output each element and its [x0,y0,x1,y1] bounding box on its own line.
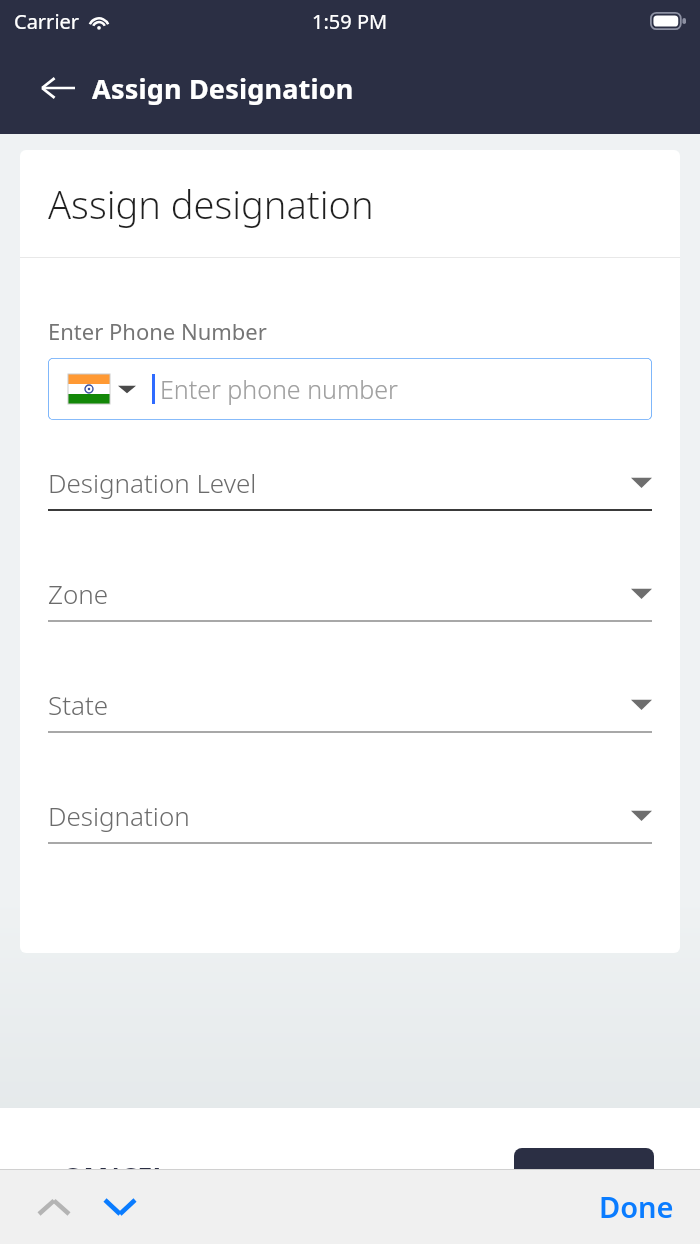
button[interactable]: Done [599,1187,674,1226]
staticText: Designation [48,798,631,833]
button[interactable]: Next field [94,1181,146,1233]
staticText: Designation Level [48,465,631,500]
staticText: Carrier [14,8,80,35]
staticText: Assign Designation [92,70,354,107]
button[interactable]: SAVE [514,1148,654,1209]
staticText: Done [599,1187,674,1226]
staticText: 1:59 PM [312,8,388,35]
staticText: Enter Phone Number [48,316,267,346]
staticText: Zone [48,576,631,611]
button[interactable]: Previous field [28,1181,80,1233]
button[interactable]: CANCEL [62,1158,168,1195]
button[interactable]: Enter phone number [48,358,652,420]
staticText: SAVE [551,1160,617,1197]
button[interactable]: State [48,683,652,733]
staticText: Assign designation [48,178,374,230]
staticText: State [48,687,631,722]
button[interactable]: Designation Level [48,461,652,511]
button[interactable]: Back [38,68,78,108]
button[interactable]: Designation [48,794,652,844]
staticText: Enter phone number [160,372,398,406]
button[interactable]: Zone [48,572,652,622]
